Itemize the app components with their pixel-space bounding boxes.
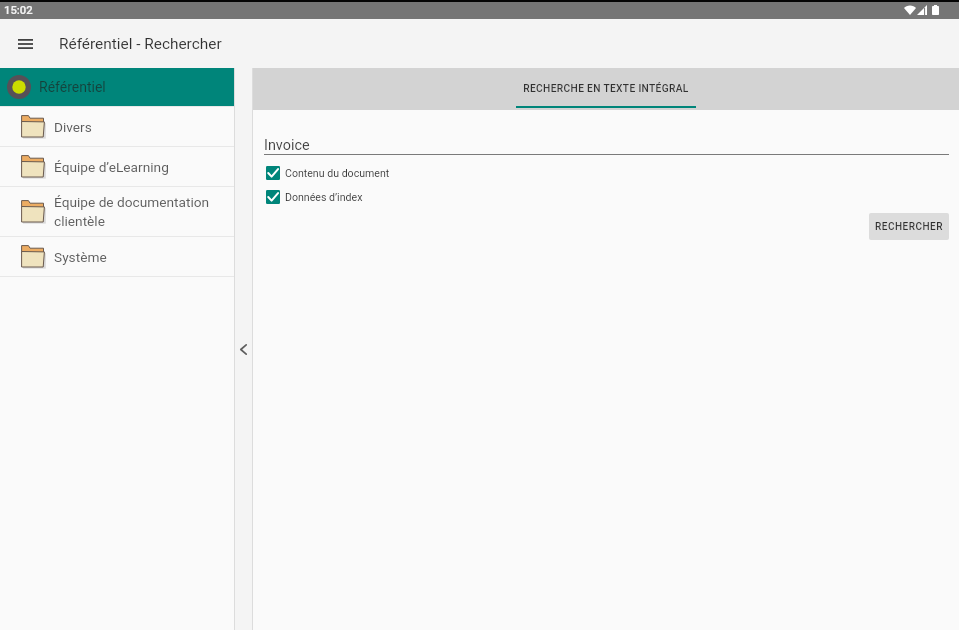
button[interactable]: Contenu du document — [264, 166, 949, 180]
button[interactable]: Données d’index — [264, 190, 949, 204]
button[interactable]: RECHERCHE EN TEXTE INTÉGRAL — [516, 68, 696, 110]
button[interactable]: RECHERCHER — [869, 213, 949, 240]
staticText: Équipe d’eLearning — [54, 159, 169, 175]
button[interactable]: Menu — [0, 19, 50, 68]
button[interactable]: Divers — [0, 107, 234, 146]
staticText: Divers — [54, 119, 92, 135]
staticText: Invoice — [264, 137, 310, 154]
button[interactable]: Équipe d’eLearning — [0, 147, 234, 186]
staticText: Équipe de documentation clientèle — [54, 194, 210, 229]
staticText: 15:02 — [4, 4, 33, 17]
staticText: Référentiel - Rechercher — [59, 35, 222, 53]
staticText: Données d’index — [285, 191, 363, 203]
staticText: RECHERCHER — [875, 221, 943, 233]
button[interactable]: Collapse panel — [234, 68, 253, 630]
button[interactable]: Équipe de documentation clientèle — [0, 187, 234, 236]
button[interactable]: Système — [0, 237, 234, 276]
button[interactable]: Référentiel — [0, 68, 234, 106]
staticText: RECHERCHE EN TEXTE INTÉGRAL — [523, 83, 689, 95]
staticText: Référentiel — [39, 79, 106, 95]
staticText: Système — [54, 249, 107, 265]
staticText: Contenu du document — [285, 167, 390, 179]
